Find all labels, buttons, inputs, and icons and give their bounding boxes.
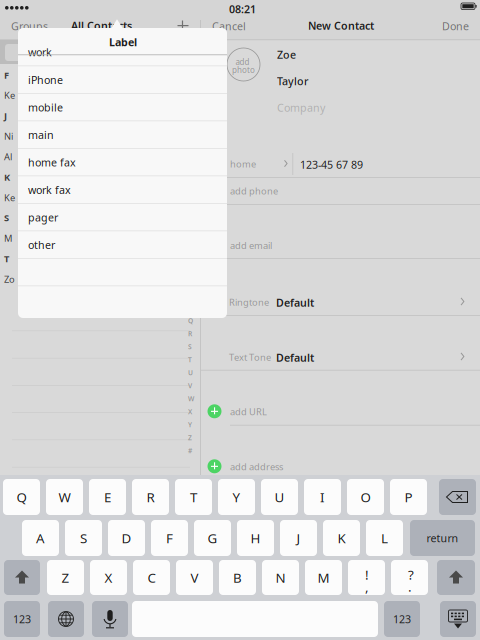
button[interactable]: Shift — [4, 560, 40, 595]
staticText: N — [275, 569, 285, 586]
staticText: W — [188, 394, 194, 403]
staticText: Default — [276, 350, 314, 365]
staticText: P — [404, 488, 412, 506]
staticText: Taylor — [277, 74, 309, 88]
staticText: iPhone — [28, 73, 63, 87]
button[interactable]: C — [133, 560, 170, 595]
button[interactable]: Switch keyboard — [48, 601, 84, 637]
staticText: home fax — [28, 155, 76, 169]
staticText: Label — [109, 35, 137, 49]
staticText: F — [4, 69, 9, 81]
staticText: Ke — [4, 89, 15, 101]
button[interactable]: Groups — [8, 20, 52, 39]
button[interactable]: J — [280, 520, 317, 556]
button[interactable]: Dictate — [92, 601, 128, 637]
staticText: main — [28, 128, 54, 142]
button[interactable]: P — [390, 479, 427, 515]
staticText: G — [207, 529, 217, 547]
button[interactable]: ! — [348, 560, 385, 595]
button[interactable]: mobile — [18, 93, 227, 120]
button[interactable]: Add contact — [171, 16, 193, 35]
button[interactable]: Done — [438, 20, 474, 39]
button[interactable]: other — [18, 230, 227, 258]
staticText: other — [28, 238, 55, 252]
staticText: return — [426, 531, 458, 545]
button[interactable]: M — [305, 560, 342, 595]
staticText: All Contacts — [71, 18, 132, 33]
staticText: U — [188, 368, 193, 377]
staticText: add address — [230, 460, 283, 473]
staticText: F — [166, 529, 173, 547]
button[interactable]: pager — [18, 203, 227, 230]
button[interactable]: F — [151, 520, 188, 556]
button[interactable]: N — [262, 560, 299, 595]
button[interactable]: A — [22, 520, 59, 556]
staticText: E — [104, 488, 111, 506]
button[interactable]: E — [89, 479, 126, 515]
staticText: I — [320, 488, 325, 506]
button[interactable]: Q — [3, 479, 40, 515]
staticText: add — [235, 57, 249, 67]
staticText: Ni — [4, 130, 13, 142]
button[interactable]: R — [132, 479, 169, 515]
button[interactable]: T — [175, 479, 212, 515]
staticText: T — [190, 488, 197, 506]
button[interactable]: I — [304, 479, 341, 515]
staticText: K — [337, 529, 345, 547]
button[interactable]: main — [18, 120, 227, 148]
button[interactable]: K — [323, 520, 360, 556]
button[interactable]: Shift — [437, 560, 475, 595]
staticText: Text Tone — [229, 351, 271, 363]
button[interactable]: Hide keyboard — [440, 601, 476, 637]
staticText: Cancel — [212, 19, 246, 33]
button[interactable]: L — [366, 520, 403, 556]
button[interactable]: work fax — [18, 175, 227, 203]
button[interactable]: B — [219, 560, 256, 595]
staticText: V — [188, 381, 192, 390]
staticText: ! — [365, 566, 369, 583]
staticText: 08:21 — [229, 2, 256, 16]
button[interactable]: W — [46, 479, 83, 515]
staticText: O — [360, 488, 370, 506]
button[interactable]: 123 — [4, 601, 40, 637]
button[interactable]: ? — [391, 560, 428, 595]
button[interactable]: S — [65, 520, 102, 556]
button[interactable]: Delete — [439, 479, 476, 515]
button[interactable]: Y — [218, 479, 255, 515]
staticText: 123 — [393, 612, 411, 626]
staticText: J — [296, 529, 300, 547]
staticText: 123 — [13, 612, 31, 626]
staticText: A — [36, 529, 45, 547]
staticText: D — [121, 529, 131, 547]
staticText: S — [4, 211, 9, 224]
button[interactable]: 123 — [384, 601, 420, 637]
staticText: Done — [442, 19, 469, 33]
staticText: L — [381, 529, 388, 547]
staticText: Y — [232, 488, 240, 506]
staticText: photo — [232, 65, 255, 75]
staticText: Groups — [11, 19, 48, 33]
button[interactable]: O — [347, 479, 384, 515]
button[interactable]: D — [108, 520, 145, 556]
button[interactable]: X — [90, 560, 127, 595]
button[interactable]: H — [237, 520, 274, 556]
staticText: add phone — [230, 185, 278, 197]
staticText: Z — [188, 433, 192, 442]
staticText: H — [250, 529, 260, 547]
button[interactable]: return — [410, 520, 475, 556]
button[interactable]: V — [176, 560, 213, 595]
button[interactable]: U — [261, 479, 298, 515]
button[interactable]: home fax — [18, 148, 227, 175]
button[interactable]: G — [194, 520, 231, 556]
staticText: Q — [188, 316, 193, 325]
button[interactable]: Z — [47, 560, 84, 595]
button[interactable]: Cancel — [209, 20, 251, 39]
staticText: K — [4, 171, 10, 183]
staticText: Company — [277, 101, 325, 115]
staticText: New Contact — [308, 18, 374, 33]
staticText: Ke — [4, 191, 15, 204]
staticText: add URL — [230, 405, 267, 418]
staticText: U — [274, 488, 284, 506]
button[interactable]: iPhone — [18, 65, 227, 93]
